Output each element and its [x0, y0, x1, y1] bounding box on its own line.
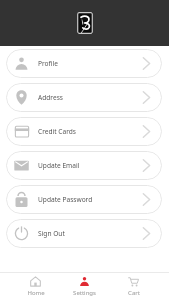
button[interactable]: Credit Cards [6, 117, 162, 146]
staticText: Profile [38, 59, 58, 68]
staticText: Cart [128, 289, 140, 297]
button[interactable]: Logo [77, 12, 93, 34]
staticText: Address [38, 93, 63, 102]
staticText: Credit Cards [38, 127, 76, 136]
staticText: Home [27, 289, 45, 297]
button[interactable]: Home [11, 276, 60, 297]
button[interactable]: Profile [6, 49, 162, 78]
button[interactable]: Sign Out [6, 219, 162, 248]
staticText: Update Password [38, 195, 93, 204]
staticText: Settings [73, 289, 96, 297]
button[interactable]: Update Password [6, 185, 162, 214]
staticText: Sign Out [38, 229, 65, 238]
button[interactable]: Cart [109, 276, 158, 297]
button[interactable]: Address [6, 83, 162, 112]
staticText: Update Email [38, 161, 80, 170]
button[interactable]: Settings [60, 276, 109, 297]
button[interactable]: Update Email [6, 151, 162, 180]
